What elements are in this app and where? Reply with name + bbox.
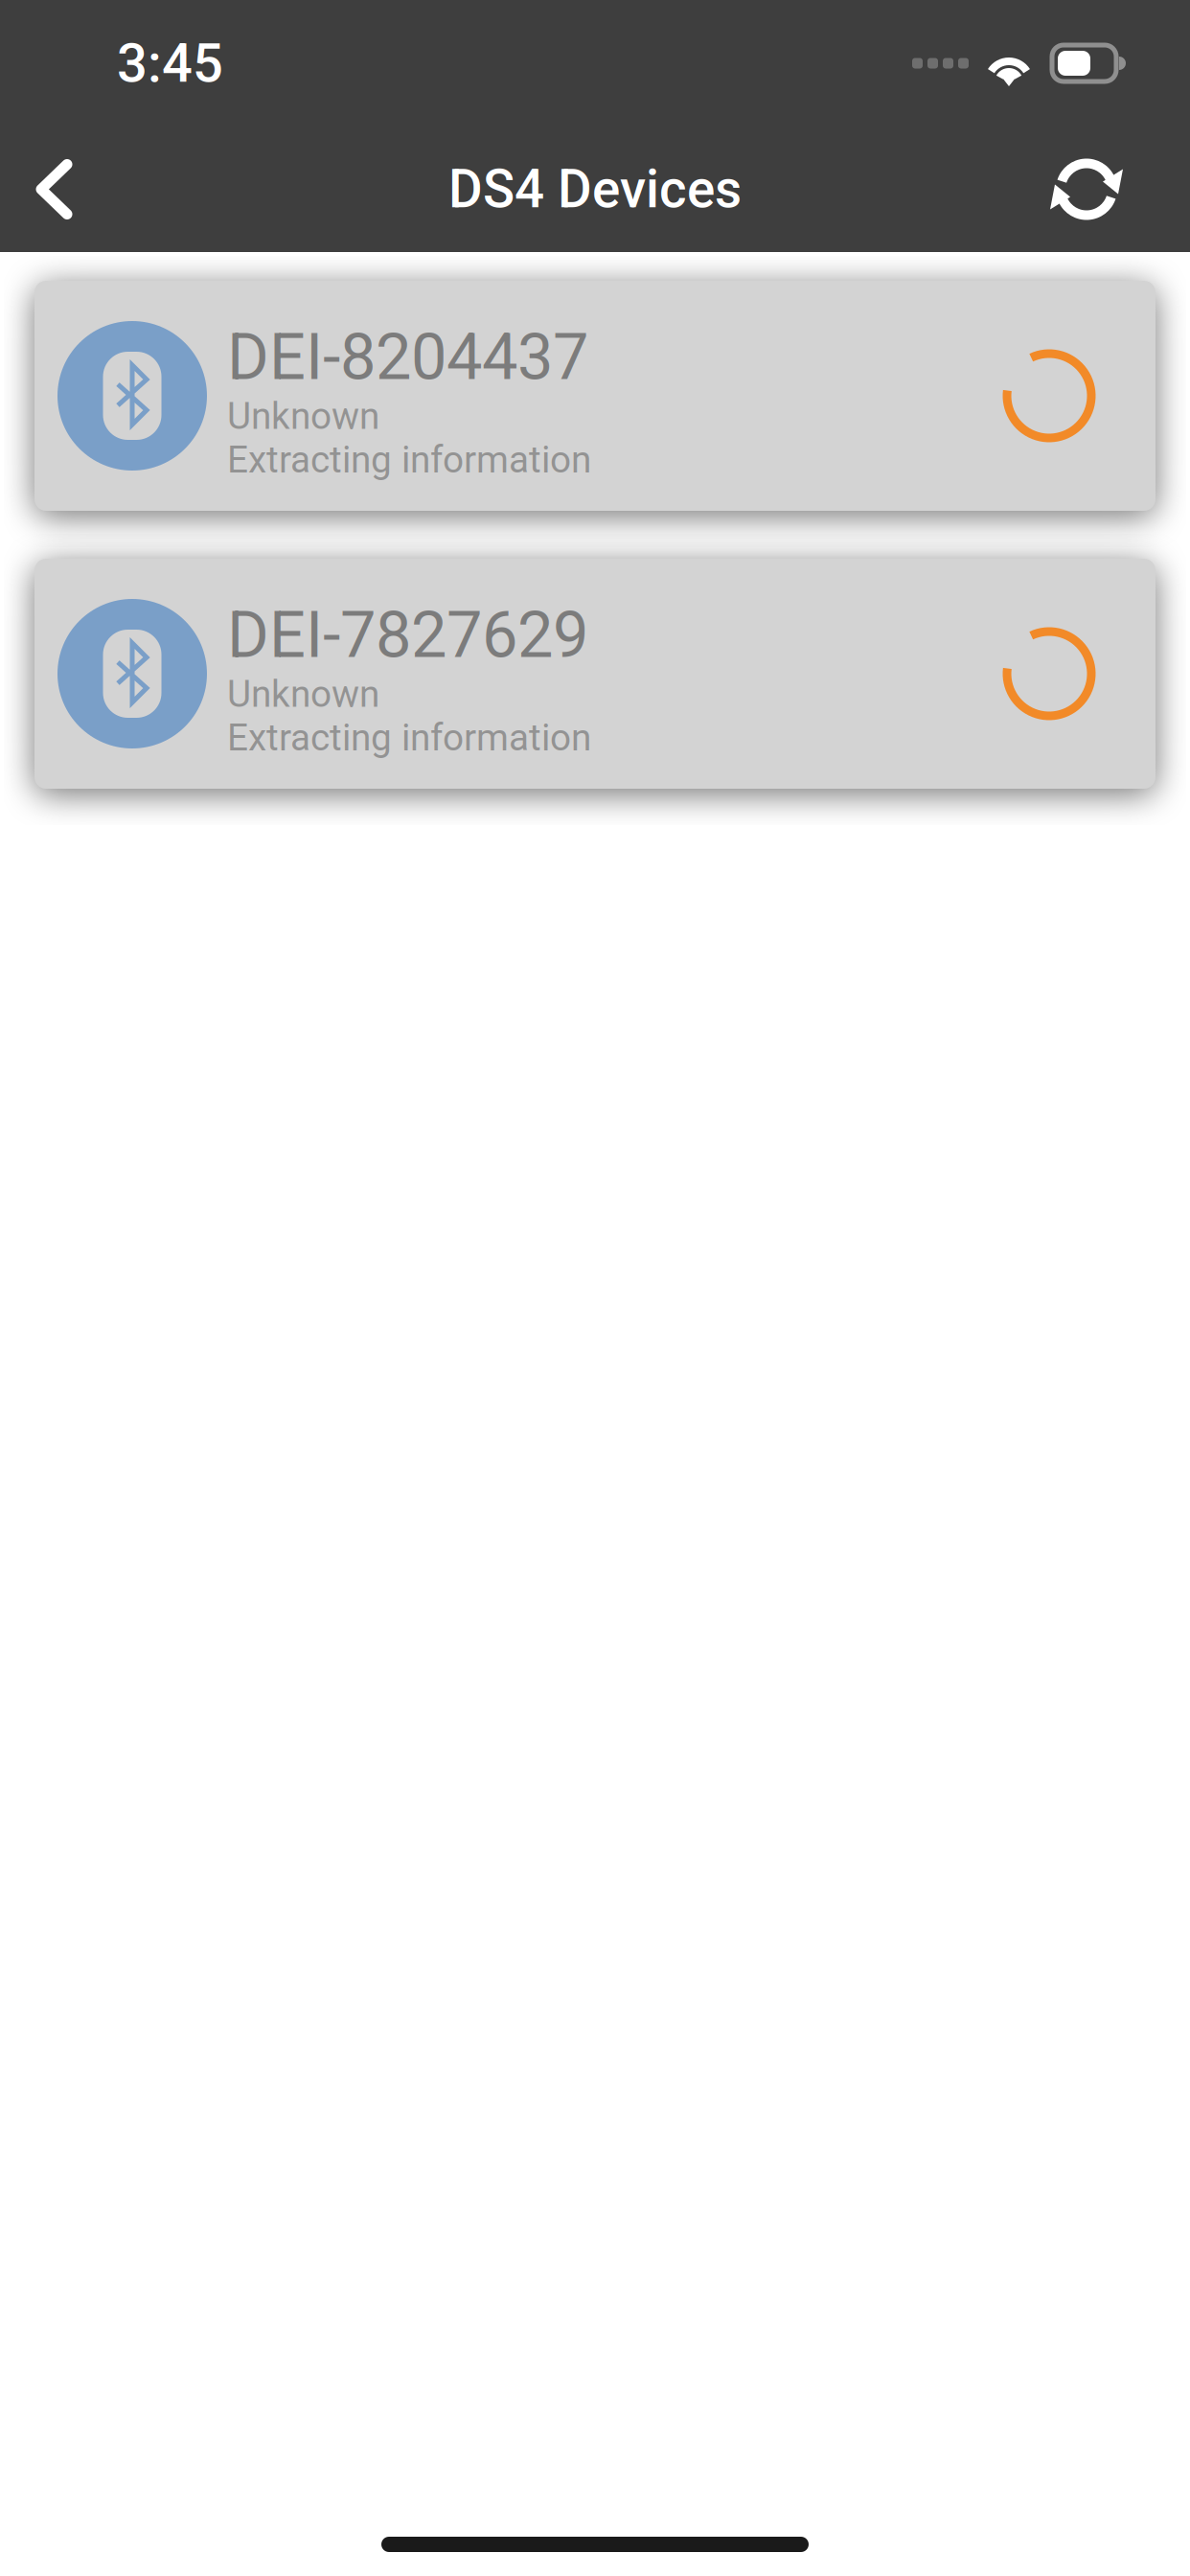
staticText: Unknown [227, 395, 379, 438]
button[interactable]: DEI-8204437 [34, 281, 1156, 511]
staticText: DEI-7827629 [227, 598, 588, 672]
staticText: Extracting information [227, 716, 591, 759]
staticText: 3:45 [117, 32, 223, 95]
button[interactable]: Refresh [983, 126, 1190, 252]
staticText: Unknown [227, 672, 379, 716]
button[interactable]: DEI-7827629 [34, 559, 1156, 789]
staticText: DEI-8204437 [227, 320, 588, 395]
staticText: Extracting information [227, 438, 591, 481]
button[interactable]: Back [0, 126, 108, 252]
staticText: DS4 Devices [448, 159, 742, 220]
